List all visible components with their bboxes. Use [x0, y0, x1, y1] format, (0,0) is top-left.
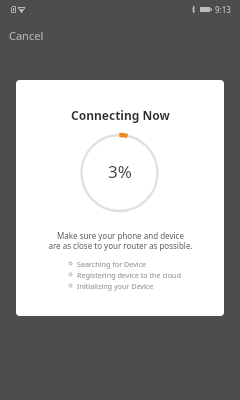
other: Bluetooth [192, 6, 195, 13]
staticText: 3% [108, 160, 132, 183]
staticText: Initializing your Device [77, 281, 154, 291]
staticText: Registering device to the cloud [77, 270, 181, 280]
other: Battery [200, 7, 212, 12]
button[interactable]: Registering device to the cloud [68, 269, 181, 280]
button[interactable]: Initializing your Device [68, 280, 154, 291]
staticText: 9:13 [215, 4, 231, 15]
button[interactable]: Cancel [0, 22, 52, 48]
staticText: Cancel [9, 28, 44, 43]
button[interactable]: Searching for Device [68, 258, 147, 269]
other: Wi-Fi [18, 6, 25, 13]
staticText: Searching for Device [77, 259, 147, 269]
staticText: Connecting Now [71, 107, 170, 123]
other: SIM card [11, 6, 16, 13]
staticText: Make sure your phone and device are as c… [48, 230, 193, 251]
